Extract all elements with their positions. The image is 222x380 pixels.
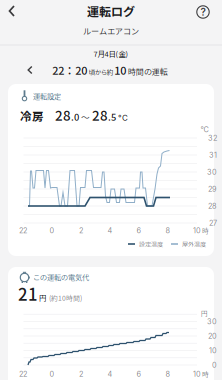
- staticText: 0: [212, 361, 217, 369]
- staticText: 31: [209, 151, 217, 159]
- staticText: この運転の電気代: [33, 272, 89, 282]
- staticText: 時: [202, 369, 209, 379]
- staticText: 6: [136, 370, 141, 378]
- staticText: ?: [200, 6, 205, 18]
- staticText: 22: [19, 370, 27, 378]
- button[interactable]: Help: [193, 2, 213, 22]
- staticText: 6: [136, 226, 141, 235]
- staticText: 〜: [79, 111, 92, 123]
- staticText: 27: [209, 219, 217, 227]
- staticText: 0: [49, 226, 54, 235]
- staticText: .0: [71, 110, 79, 123]
- staticText: 30: [207, 168, 217, 176]
- staticText: 10: [209, 346, 217, 355]
- staticText: 28: [92, 105, 108, 125]
- staticText: 4: [107, 226, 112, 235]
- staticText: 7月4日(金): [93, 48, 128, 59]
- staticText: 2: [79, 370, 83, 378]
- staticText: 8: [165, 370, 170, 378]
- button[interactable]: 7月4日(金): [71, 46, 151, 60]
- staticText: 屋外温度: [182, 240, 206, 248]
- staticText: 21: [18, 281, 38, 305]
- staticText: 2: [79, 226, 83, 235]
- staticText: 30: [207, 317, 217, 326]
- staticText: 設定温度: [139, 240, 163, 248]
- staticText: °C: [200, 125, 208, 134]
- staticText: 運転ログ: [87, 2, 135, 20]
- staticText: 28: [55, 105, 71, 125]
- staticText: °C: [116, 113, 128, 123]
- staticText: 29: [208, 185, 217, 193]
- staticText: 冷房: [20, 107, 44, 124]
- staticText: 10: [193, 226, 201, 235]
- staticText: 0: [49, 370, 54, 378]
- button[interactable]: Back: [0, 0, 22, 22]
- staticText: ルームエアコン: [83, 25, 139, 37]
- staticText: 28: [208, 202, 217, 210]
- staticText: .5: [108, 110, 116, 123]
- staticText: 22：20: [52, 62, 87, 78]
- staticText: 時: [202, 226, 209, 235]
- staticText: 32: [208, 134, 217, 142]
- staticText: (約10時間): [47, 293, 82, 303]
- staticText: 円: [39, 292, 46, 303]
- staticText: 22: [19, 226, 27, 235]
- staticText: 頃から約: [89, 67, 113, 77]
- button[interactable]: Previous run: [22, 62, 38, 78]
- staticText: 4: [107, 370, 112, 378]
- staticText: 10: [193, 370, 201, 378]
- staticText: 8: [165, 226, 170, 235]
- staticText: 運転設定: [33, 91, 61, 101]
- staticText: 10: [114, 62, 126, 78]
- staticText: 時間の運転: [128, 65, 168, 77]
- staticText: 円: [201, 308, 208, 318]
- staticText: 20: [208, 332, 217, 340]
